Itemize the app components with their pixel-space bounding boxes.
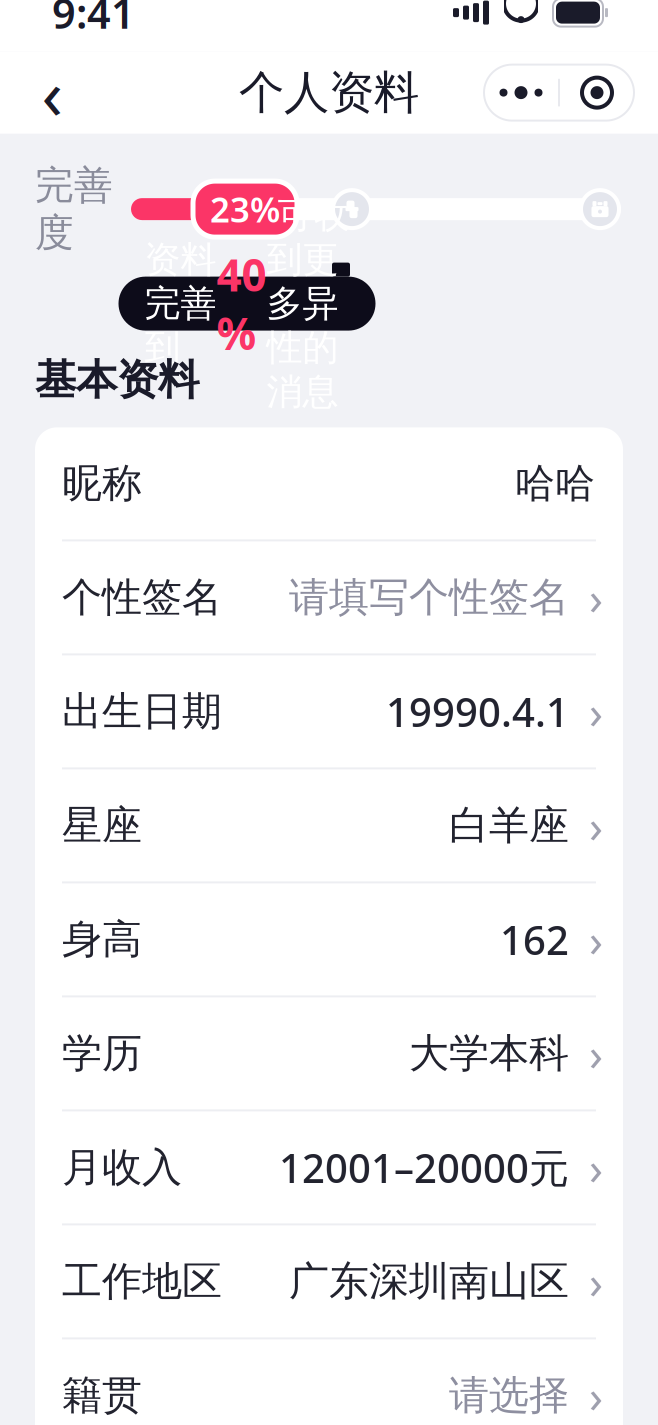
staticText: 大学本科 (409, 1029, 569, 1078)
button[interactable]: 昵称 (35, 427, 623, 539)
staticText: 出生日期 (62, 687, 222, 736)
button[interactable]: 工作地区 (35, 1225, 623, 1337)
staticText: › (589, 1365, 603, 1425)
button[interactable]: 学历 (35, 997, 623, 1109)
staticText: 162 (500, 913, 569, 966)
staticText: 身高 (62, 915, 142, 964)
staticText: 个人资料 (239, 65, 419, 120)
button[interactable]: 星座 (35, 769, 623, 881)
staticText: 月收入 (62, 1143, 182, 1192)
staticText: 籍贯 (62, 1371, 142, 1420)
button[interactable]: 籍贯 (35, 1339, 623, 1425)
staticText: › (589, 1251, 603, 1311)
button[interactable]: 关闭 (560, 66, 634, 120)
staticText: 基本资料 (35, 355, 199, 405)
button[interactable]: 返回 (22, 63, 82, 123)
button[interactable]: 出生日期 (35, 655, 623, 767)
staticText: 资料完善到 (144, 237, 216, 370)
staticText: 12001–20000元 (279, 1141, 569, 1194)
staticText: 工作地区 (62, 1257, 222, 1306)
staticText: › (589, 681, 603, 741)
staticText: 广东深圳南山区 (289, 1257, 569, 1306)
button[interactable]: 身高 (35, 883, 623, 995)
staticText: 请填写个性签名 (289, 573, 569, 622)
staticText: 请选择 (449, 1371, 569, 1420)
staticText: › (589, 567, 603, 627)
staticText: 40% (216, 245, 266, 362)
staticText: ‹ (41, 47, 62, 139)
staticText: › (589, 909, 603, 969)
staticText: 哈哈 (515, 459, 595, 508)
staticText: 昵称 (62, 459, 142, 508)
staticText: 完善度 (35, 162, 113, 257)
staticText: 9:41 (52, 0, 135, 40)
staticText: 白羊座 (449, 801, 569, 850)
staticText: 19990.4.1 (386, 685, 569, 738)
staticText: 个性签名 (62, 573, 222, 622)
staticText: 学历 (62, 1029, 142, 1078)
staticText: › (589, 1137, 603, 1197)
staticText: › (589, 1023, 603, 1083)
button[interactable]: 个性签名 (35, 541, 623, 653)
staticText: › (589, 795, 603, 855)
button[interactable]: 月收入 (35, 1111, 623, 1223)
staticText: 23% (210, 186, 280, 232)
staticText: 星座 (62, 801, 142, 850)
staticText: 可收到更多异性的消息 (266, 193, 349, 414)
button[interactable]: 更多 (484, 66, 558, 120)
